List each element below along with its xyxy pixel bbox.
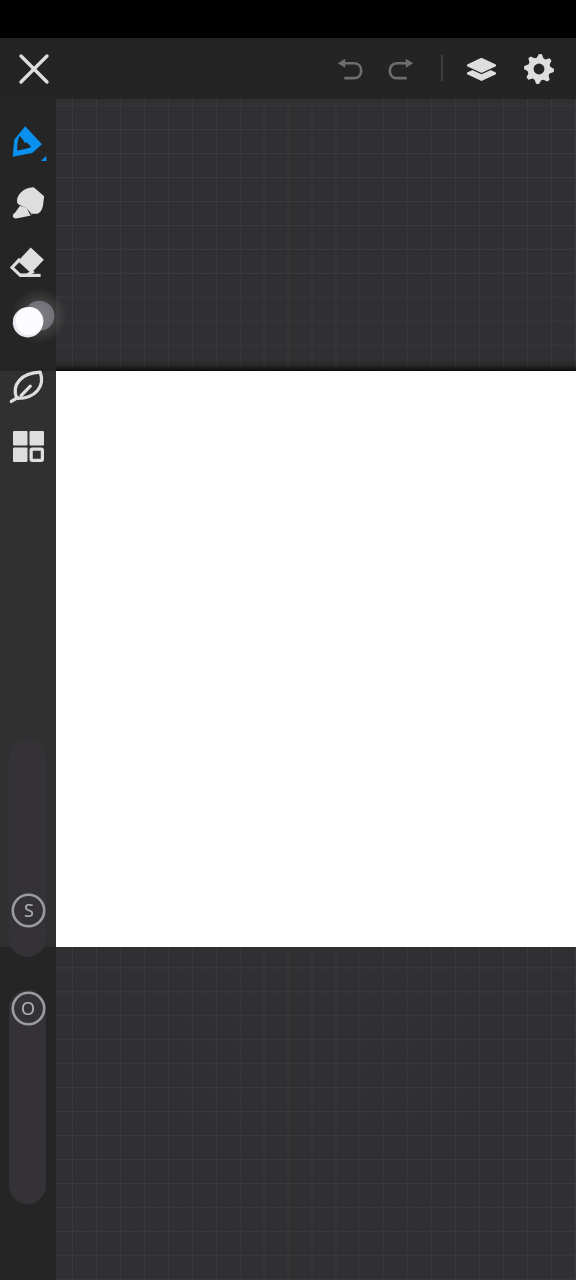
staticText: O xyxy=(21,996,36,1021)
staticText: S xyxy=(24,898,34,923)
button[interactable]: Layers xyxy=(453,40,509,96)
button[interactable]: Undo xyxy=(322,41,378,97)
button[interactable]: Leaf xyxy=(0,359,56,415)
button[interactable]: Brush xyxy=(0,114,56,170)
button[interactable]: Smudge xyxy=(0,176,56,232)
button[interactable]: Brush size slider xyxy=(9,739,46,957)
button[interactable]: Color xyxy=(0,294,56,350)
button[interactable]: Eraser xyxy=(0,235,56,291)
button[interactable]: Settings xyxy=(511,41,567,97)
button[interactable]: Layout xyxy=(0,418,56,474)
button[interactable]: Opacity slider xyxy=(9,990,46,1204)
button[interactable]: Close xyxy=(2,37,66,101)
button[interactable]: Redo xyxy=(372,41,428,97)
